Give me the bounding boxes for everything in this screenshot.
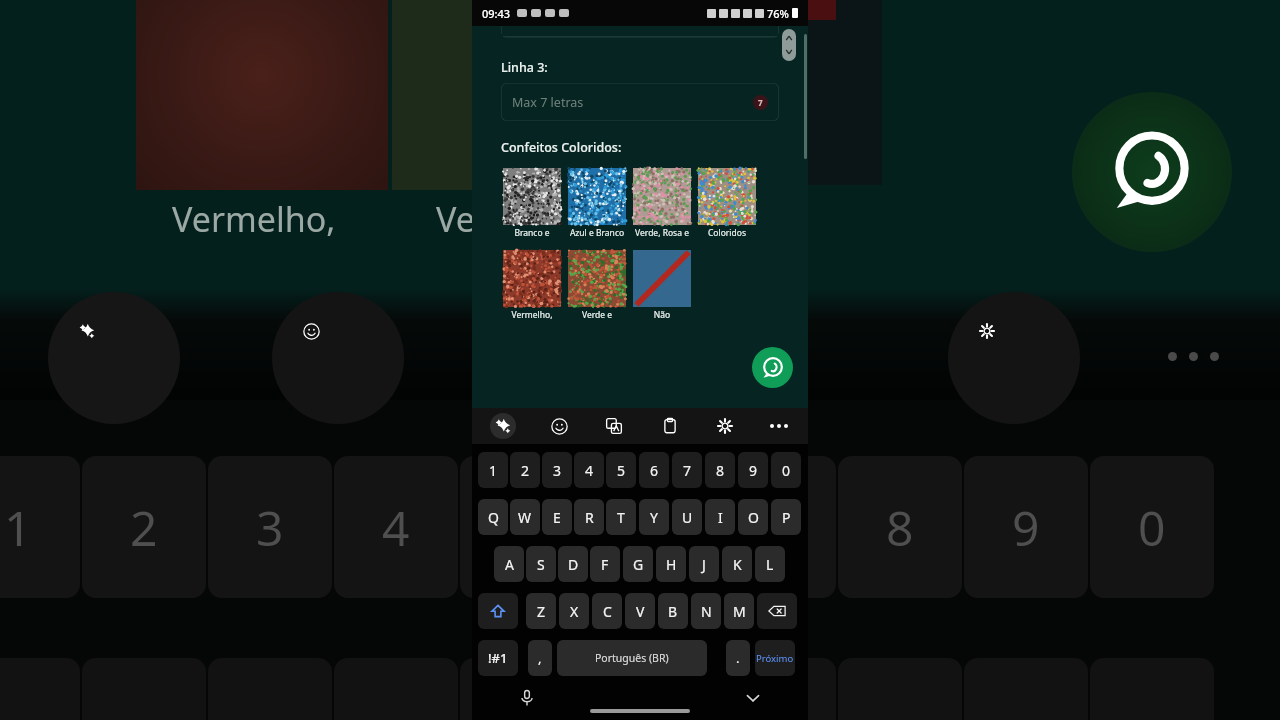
button[interactable]: 2 bbox=[510, 452, 540, 488]
staticText: T bbox=[617, 508, 625, 527]
button[interactable]: Z bbox=[526, 593, 556, 629]
button[interactable]: A bbox=[494, 546, 524, 582]
staticText: Próximo bbox=[756, 652, 794, 665]
staticText: 4 bbox=[585, 461, 594, 480]
staticText: Verde e bbox=[566, 309, 628, 321]
button[interactable]: Coloridos bbox=[696, 168, 758, 239]
staticText: N bbox=[701, 602, 712, 621]
button[interactable]: H bbox=[656, 546, 686, 582]
button[interactable]: Magic bbox=[490, 413, 516, 439]
staticText: V bbox=[636, 602, 645, 621]
button[interactable]: U bbox=[672, 499, 702, 535]
button[interactable]: F bbox=[590, 546, 620, 582]
staticText: W bbox=[518, 508, 532, 527]
staticText: Max 7 letras bbox=[512, 94, 584, 111]
staticText: H bbox=[666, 555, 677, 574]
staticText: I bbox=[718, 508, 723, 527]
staticText: , bbox=[538, 649, 542, 667]
button[interactable]: E bbox=[542, 499, 572, 535]
button[interactable]: Próximo bbox=[755, 640, 795, 676]
staticText: 2 bbox=[130, 495, 158, 560]
button[interactable]: 0 bbox=[771, 452, 801, 488]
button[interactable]: N bbox=[691, 593, 721, 629]
button[interactable]: Vermelho, bbox=[501, 250, 563, 321]
button[interactable]: Voice input bbox=[512, 683, 542, 713]
button[interactable]: 8 bbox=[705, 452, 735, 488]
button[interactable]: , bbox=[528, 640, 552, 676]
staticText: R bbox=[585, 508, 594, 527]
button[interactable]: J bbox=[689, 546, 719, 582]
button[interactable]: Hide keyboard bbox=[738, 683, 768, 713]
staticText: Não bbox=[631, 309, 693, 321]
button[interactable]: G bbox=[623, 546, 653, 582]
button[interactable]: R bbox=[574, 499, 604, 535]
staticText: Vermelho, bbox=[172, 196, 336, 242]
button[interactable]: 7 bbox=[672, 452, 702, 488]
staticText: Verde, Rosa e bbox=[631, 227, 693, 239]
button[interactable]: Emoji bbox=[546, 413, 572, 439]
button[interactable]: Y bbox=[639, 499, 669, 535]
button[interactable]: O bbox=[738, 499, 768, 535]
button[interactable]: I bbox=[705, 499, 735, 535]
staticText: D bbox=[568, 555, 579, 574]
staticText: 8 bbox=[716, 461, 725, 480]
button[interactable]: 1 bbox=[478, 452, 508, 488]
staticText: B bbox=[668, 602, 678, 621]
staticText: 7 bbox=[758, 97, 763, 108]
button[interactable]: Azul e Branco bbox=[566, 168, 628, 239]
button[interactable]: Settings bbox=[712, 413, 738, 439]
button[interactable]: B bbox=[658, 593, 688, 629]
staticText: J bbox=[702, 555, 706, 574]
button[interactable]: Backspace bbox=[757, 593, 797, 629]
button[interactable]: 4 bbox=[574, 452, 604, 488]
button[interactable]: Branco e bbox=[501, 168, 563, 239]
staticText: 2 bbox=[521, 461, 530, 480]
staticText: Y bbox=[650, 508, 658, 527]
button[interactable]: !#1 bbox=[478, 640, 518, 676]
staticText: 6 bbox=[650, 461, 659, 480]
staticText: L bbox=[766, 555, 774, 574]
staticText: S bbox=[537, 555, 545, 574]
staticText: Q bbox=[488, 508, 499, 527]
button[interactable]: D bbox=[558, 546, 588, 582]
button[interactable]: Clipboard bbox=[657, 413, 683, 439]
button[interactable]: K bbox=[722, 546, 752, 582]
staticText: Branco e bbox=[501, 227, 563, 239]
button[interactable]: Português (BR) bbox=[557, 640, 707, 676]
staticText: U bbox=[682, 508, 693, 527]
button[interactable]: Q bbox=[478, 499, 508, 535]
button[interactable]: More bbox=[768, 413, 790, 439]
button[interactable]: Verde, Rosa e bbox=[631, 168, 693, 239]
button[interactable]: Translate bbox=[601, 413, 627, 439]
button[interactable]: L bbox=[755, 546, 785, 582]
button[interactable]: Scroll bbox=[782, 29, 796, 61]
button[interactable]: WhatsApp bbox=[752, 347, 793, 388]
staticText: G bbox=[633, 555, 644, 574]
staticText: 7 bbox=[683, 461, 692, 480]
staticText: 5 bbox=[617, 461, 626, 480]
button[interactable]: 3 bbox=[542, 452, 572, 488]
button[interactable]: X bbox=[559, 593, 589, 629]
button[interactable]: V bbox=[625, 593, 655, 629]
button[interactable]: Não bbox=[631, 250, 693, 321]
staticText: 9 bbox=[749, 461, 758, 480]
staticText: Azul e Branco bbox=[566, 227, 628, 239]
button[interactable]: 9 bbox=[738, 452, 768, 488]
staticText: Coloridos bbox=[696, 227, 758, 239]
button[interactable]: . bbox=[726, 640, 750, 676]
button[interactable]: Verde e bbox=[566, 250, 628, 321]
button[interactable]: M bbox=[724, 593, 754, 629]
button[interactable]: Max 7 letras bbox=[501, 83, 779, 121]
staticText: 1 bbox=[4, 495, 32, 560]
staticText: F bbox=[601, 555, 609, 574]
button[interactable]: 6 bbox=[639, 452, 669, 488]
button[interactable]: C bbox=[592, 593, 622, 629]
button[interactable]: P bbox=[771, 499, 801, 535]
button[interactable]: W bbox=[510, 499, 540, 535]
button[interactable]: Shift bbox=[478, 593, 518, 629]
button[interactable]: 5 bbox=[606, 452, 636, 488]
button[interactable]: S bbox=[526, 546, 556, 582]
staticText: 7 bbox=[760, 495, 788, 560]
staticText: 76% bbox=[767, 6, 789, 21]
button[interactable]: T bbox=[606, 499, 636, 535]
